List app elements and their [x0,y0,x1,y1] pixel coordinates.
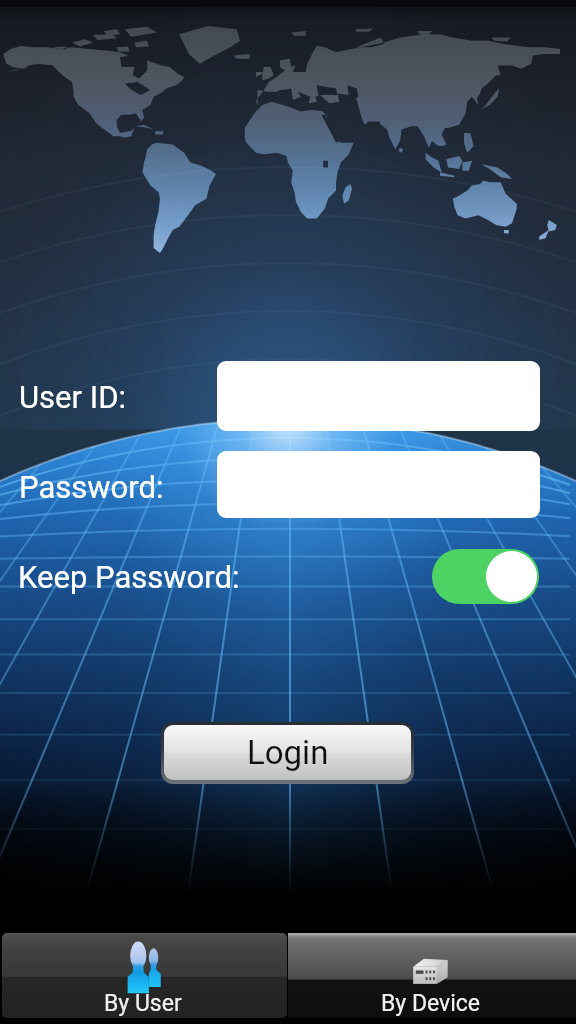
button[interactable]: Keep password toggle [432,549,539,604]
staticText: User ID: [19,379,127,415]
button[interactable] [217,361,540,431]
button[interactable] [2,933,287,1018]
button[interactable] [217,451,540,518]
staticText: Keep Password: [18,559,240,595]
staticText: Login [247,733,329,772]
button[interactable] [288,933,576,1018]
staticText: By User [104,990,182,1017]
staticText: Password: [19,469,164,505]
staticText: By Device [381,990,481,1017]
button[interactable]: Login [161,722,414,784]
